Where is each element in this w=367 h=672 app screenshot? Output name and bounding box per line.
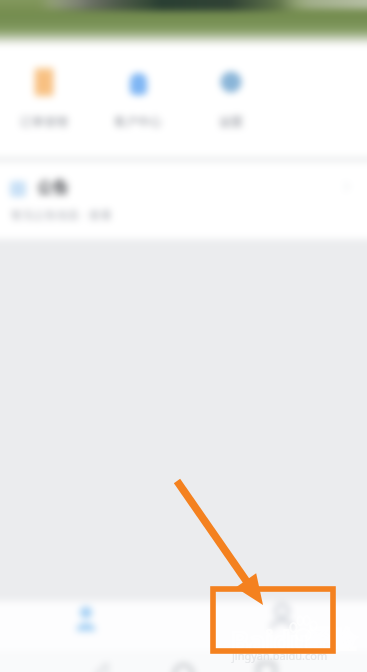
button[interactable]: 设置 [195,66,267,146]
button[interactable]: Home [40,601,132,651]
button[interactable]: Profile [236,601,328,651]
staticText: 公告 [37,178,69,198]
staticText: 设置 [219,114,243,129]
button[interactable]: 公告 [0,162,367,239]
staticText: jingyan.baidu.com [232,648,328,663]
staticText: 暂无公告信息 · 查看 [11,207,113,222]
staticText: Baidu [231,622,308,659]
button[interactable]: 客户中心 [102,66,174,146]
staticText: 客户中心 [114,114,162,129]
staticText: 订单管理 [20,114,68,129]
staticText: 经验 [306,624,356,655]
button[interactable]: 订单管理 [8,66,80,146]
